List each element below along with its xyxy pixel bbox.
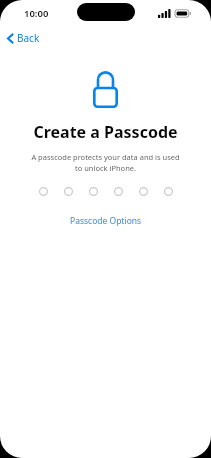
staticText: 10:00 bbox=[24, 7, 49, 20]
staticText: Back bbox=[17, 31, 40, 45]
staticText: A passcode protects your data and is use… bbox=[10, 152, 201, 173]
staticText: Create a Passcode bbox=[33, 121, 178, 143]
staticText: Passcode Options bbox=[70, 215, 142, 227]
button[interactable]: Passcode Options bbox=[62, 212, 150, 230]
button[interactable]: Back bbox=[5, 29, 42, 47]
